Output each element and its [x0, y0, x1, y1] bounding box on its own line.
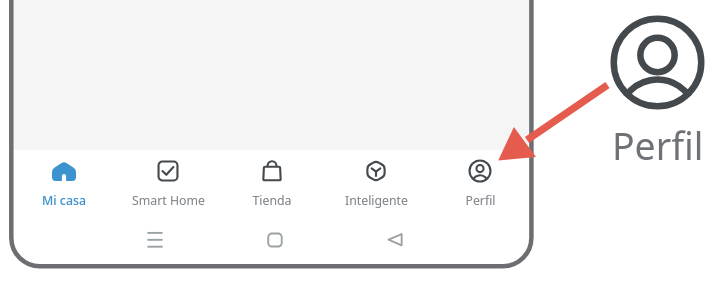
button[interactable]: Perfil — [600, 8, 715, 168]
button[interactable]: Mi casa — [12, 150, 116, 212]
button[interactable]: Home — [215, 216, 335, 264]
button[interactable]: Inteligente — [324, 150, 428, 212]
button[interactable]: Back — [335, 216, 454, 264]
staticText: Mi casa — [42, 192, 86, 209]
staticText: Perfil — [465, 192, 496, 209]
staticText: Smart Home — [132, 192, 205, 209]
button[interactable]: Smart Home — [116, 150, 220, 212]
staticText: Inteligente — [345, 192, 408, 209]
button[interactable]: Tienda — [220, 150, 324, 212]
staticText: Perfil — [612, 120, 704, 171]
button[interactable]: Recent apps — [95, 216, 215, 264]
staticText: Tienda — [252, 192, 292, 209]
button[interactable]: Perfil — [428, 150, 532, 212]
